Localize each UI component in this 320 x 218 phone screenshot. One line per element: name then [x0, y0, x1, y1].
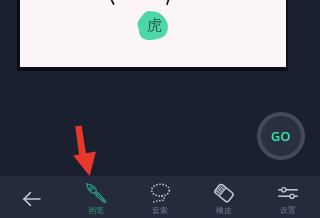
staticText: GO	[271, 128, 291, 145]
button[interactable]: GO	[261, 116, 301, 156]
button[interactable]: 设置	[256, 176, 320, 218]
button[interactable]: 画笔	[64, 176, 128, 218]
staticText: 套索	[152, 205, 168, 215]
staticText: 橡皮	[216, 205, 232, 215]
staticText: 画笔	[88, 205, 104, 215]
button[interactable]: Back	[0, 176, 64, 218]
staticText: 设置	[280, 205, 296, 215]
button[interactable]: 套索	[128, 176, 192, 218]
staticText: 虎	[147, 16, 162, 35]
button[interactable]: 橡皮	[192, 176, 256, 218]
